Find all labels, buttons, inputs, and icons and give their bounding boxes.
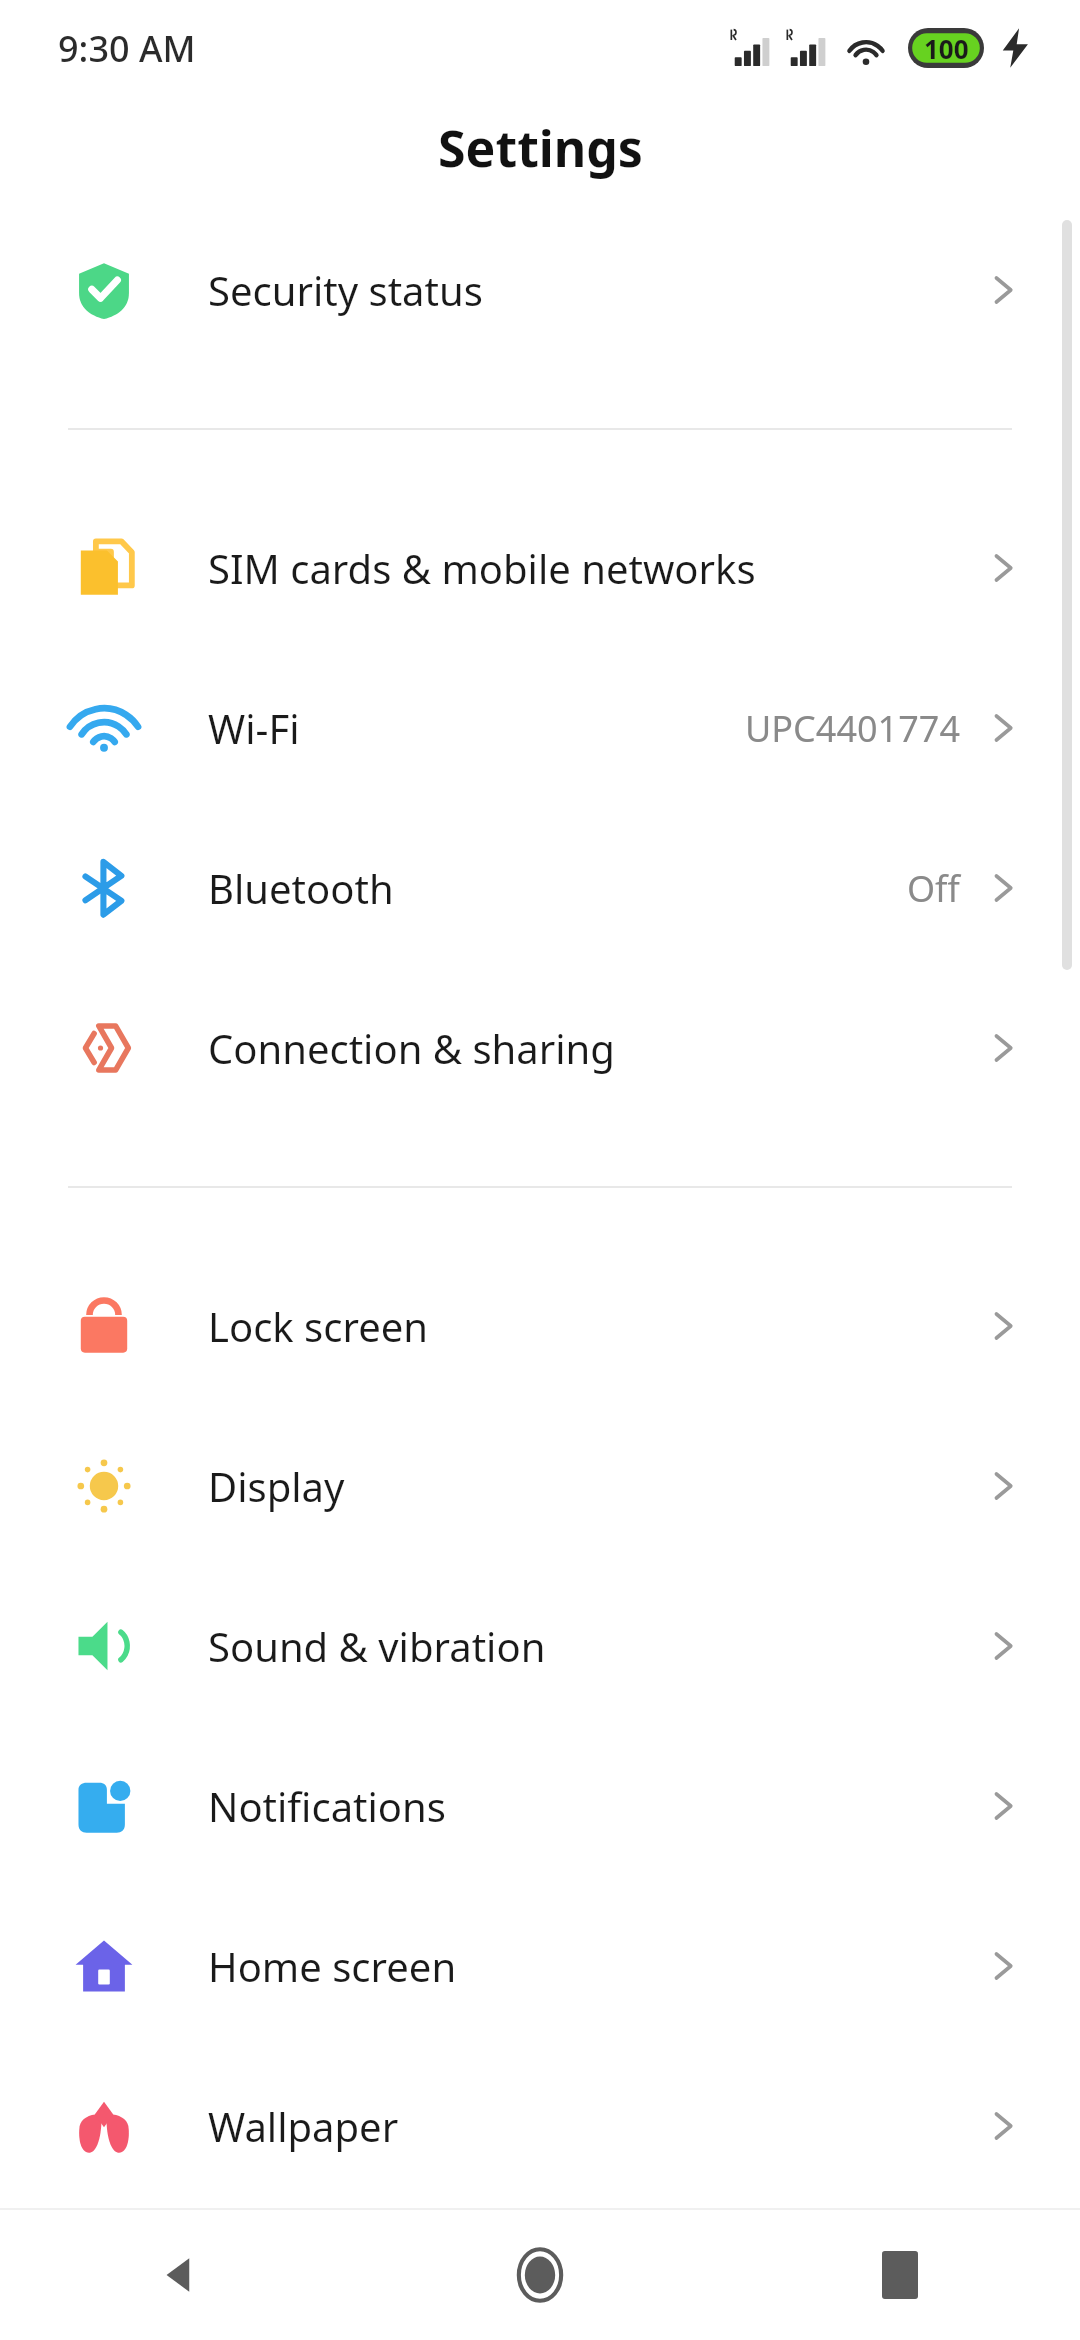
button[interactable]: Recent apps xyxy=(720,2210,1080,2340)
button[interactable]: Home xyxy=(360,2210,720,2340)
staticText: Lock screen xyxy=(208,1299,429,1353)
button[interactable]: Display xyxy=(0,1406,1080,1566)
staticText: Display xyxy=(208,1459,345,1513)
button[interactable]: Wi-Fi xyxy=(0,648,1080,808)
staticText: 9:30 AM xyxy=(58,24,196,73)
button[interactable]: Connection & sharing xyxy=(0,968,1080,1128)
button[interactable]: Security status xyxy=(0,210,1080,370)
button[interactable]: Wallpaper xyxy=(0,2046,1080,2206)
button[interactable]: Sound & vibration xyxy=(0,1566,1080,1726)
button[interactable]: Bluetooth xyxy=(0,808,1080,968)
button[interactable]: Back xyxy=(0,2210,360,2340)
staticText: 100 xyxy=(924,31,969,66)
staticText: Security status xyxy=(208,263,483,317)
staticText: Home screen xyxy=(208,1939,457,1993)
staticText: Sound & vibration xyxy=(208,1619,546,1673)
staticText: Off xyxy=(907,864,960,913)
button[interactable]: Lock screen xyxy=(0,1246,1080,1406)
staticText: SIM cards & mobile networks xyxy=(208,541,756,595)
staticText: Settings xyxy=(438,114,643,182)
staticText: Wi-Fi xyxy=(208,701,300,755)
staticText: Notifications xyxy=(208,1779,446,1833)
button[interactable]: Notifications xyxy=(0,1726,1080,1886)
staticText: Connection & sharing xyxy=(208,1021,615,1075)
staticText: Wallpaper xyxy=(208,2099,399,2153)
staticText: Bluetooth xyxy=(208,861,394,915)
staticText: UPC4401774 xyxy=(745,704,960,753)
button[interactable]: SIM cards & mobile networks xyxy=(0,488,1080,648)
button[interactable]: Home screen xyxy=(0,1886,1080,2046)
